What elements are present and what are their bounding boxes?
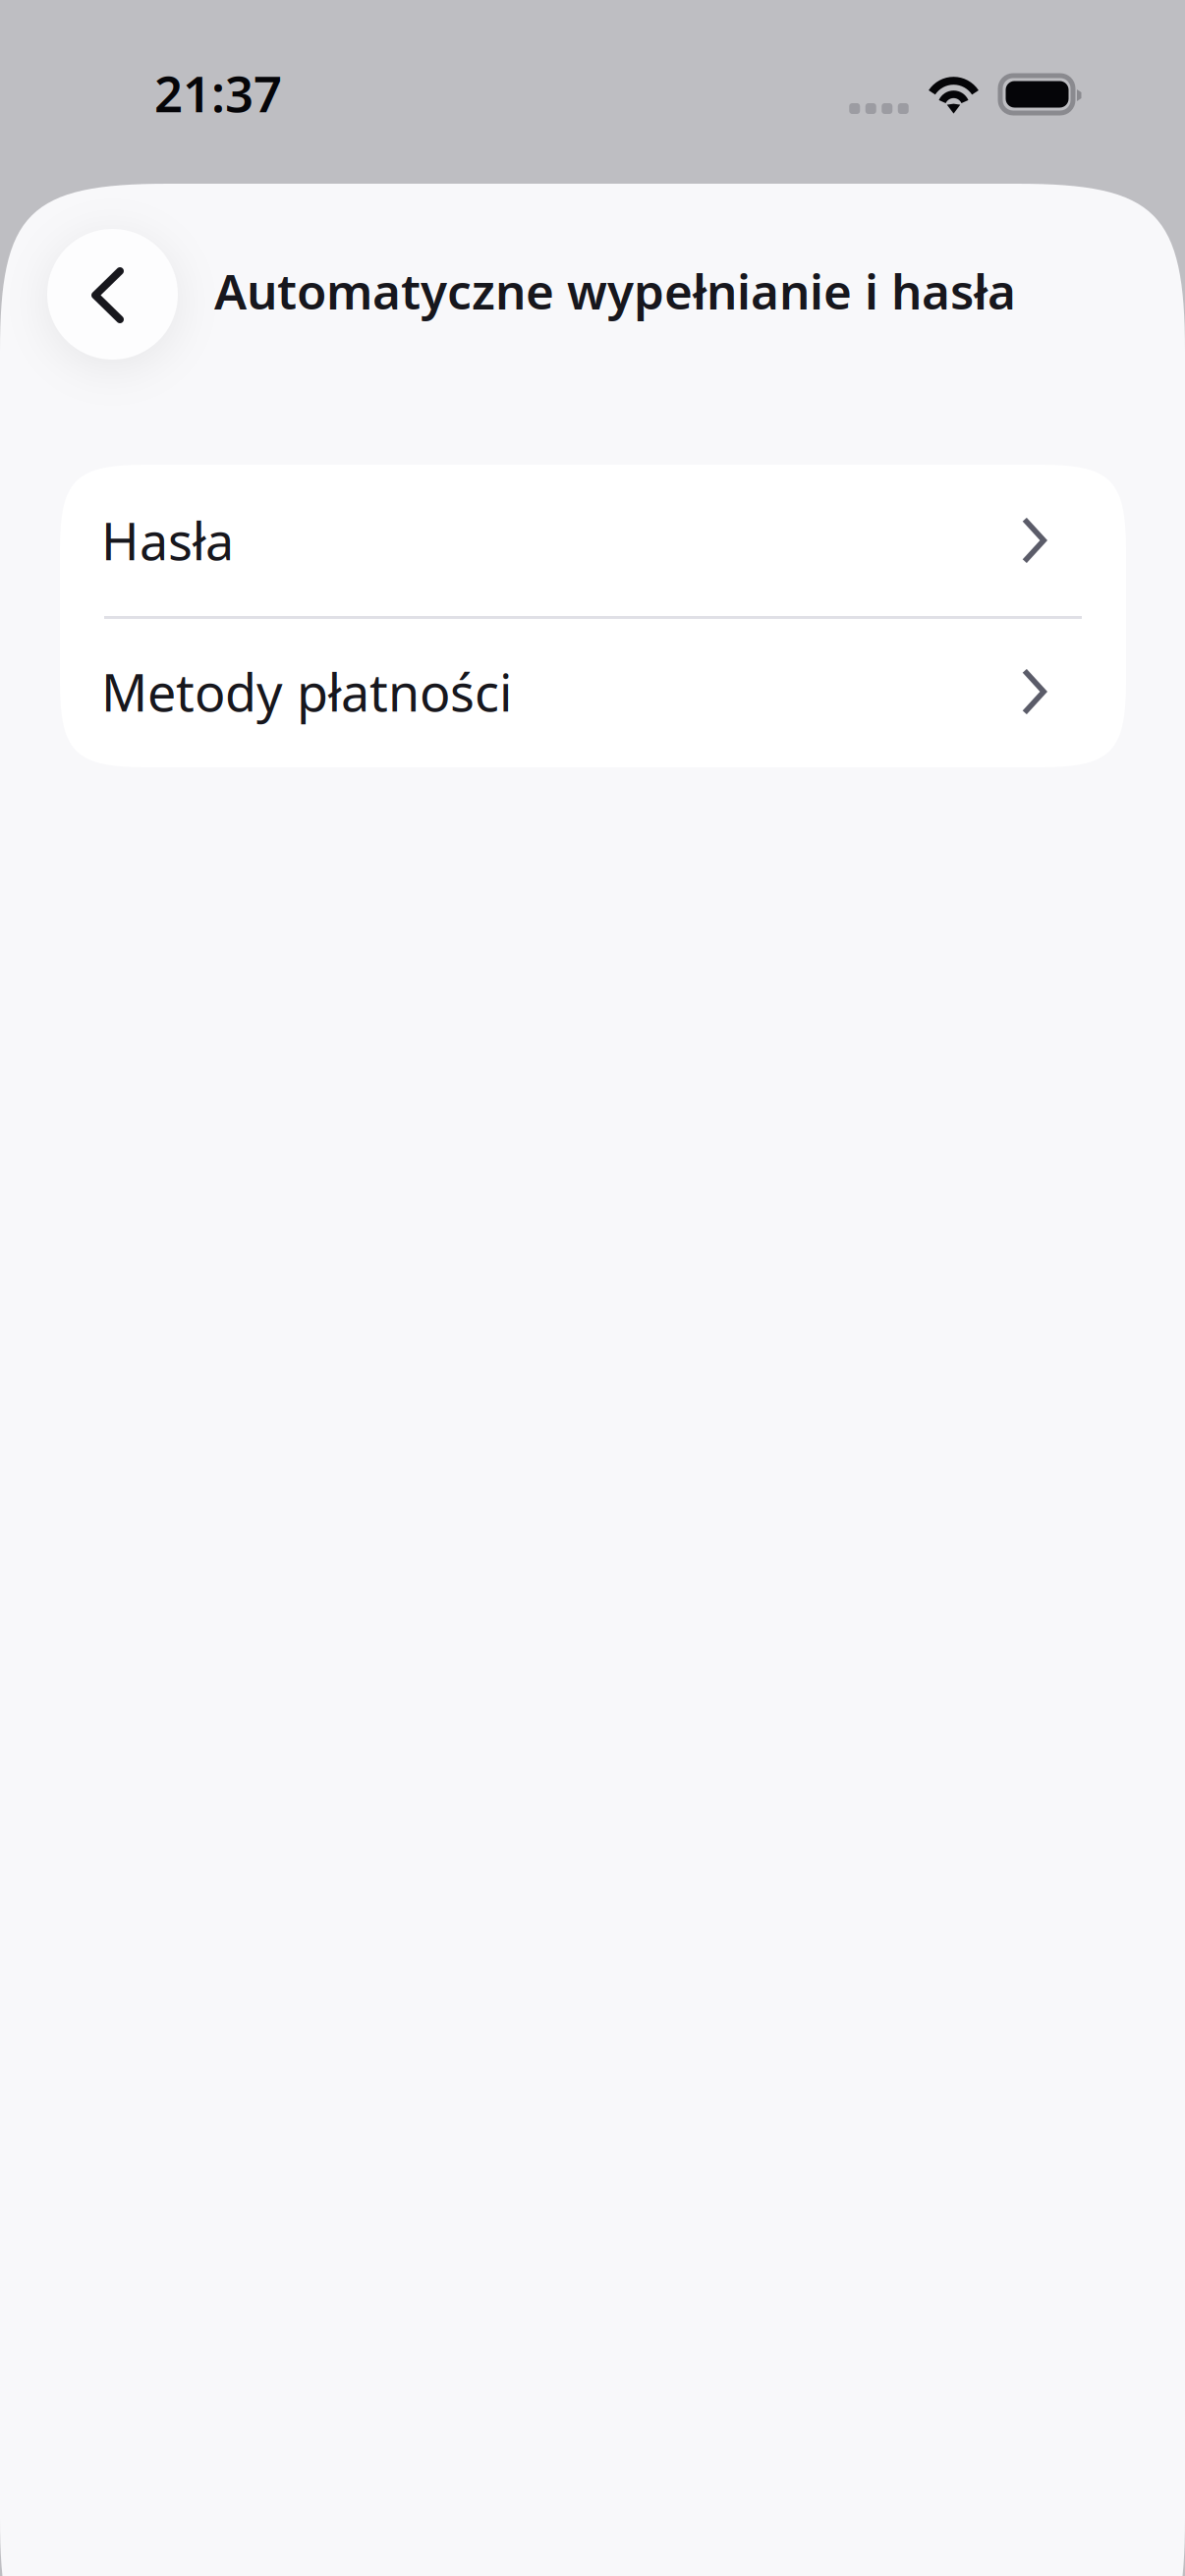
staticText: Metody płatności [101,658,512,726]
button[interactable]: Metody płatności [60,616,1126,767]
staticText: Automatyczne wypełnianie i hasła [214,258,1016,323]
button[interactable]: Hasła [60,465,1126,616]
button[interactable]: Wstecz [47,229,178,360]
staticText: 21:37 [154,60,282,126]
staticText: Hasła [101,506,234,574]
